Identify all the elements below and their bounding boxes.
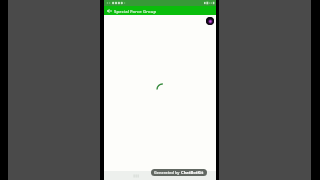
staticText: Generated by — [154, 170, 181, 175]
button[interactable]: Profile — [206, 17, 214, 25]
staticText: Special Force Group — [114, 8, 157, 14]
button[interactable]: Navigate back — [104, 6, 114, 15]
staticText: ChatBotKit — [181, 170, 204, 176]
